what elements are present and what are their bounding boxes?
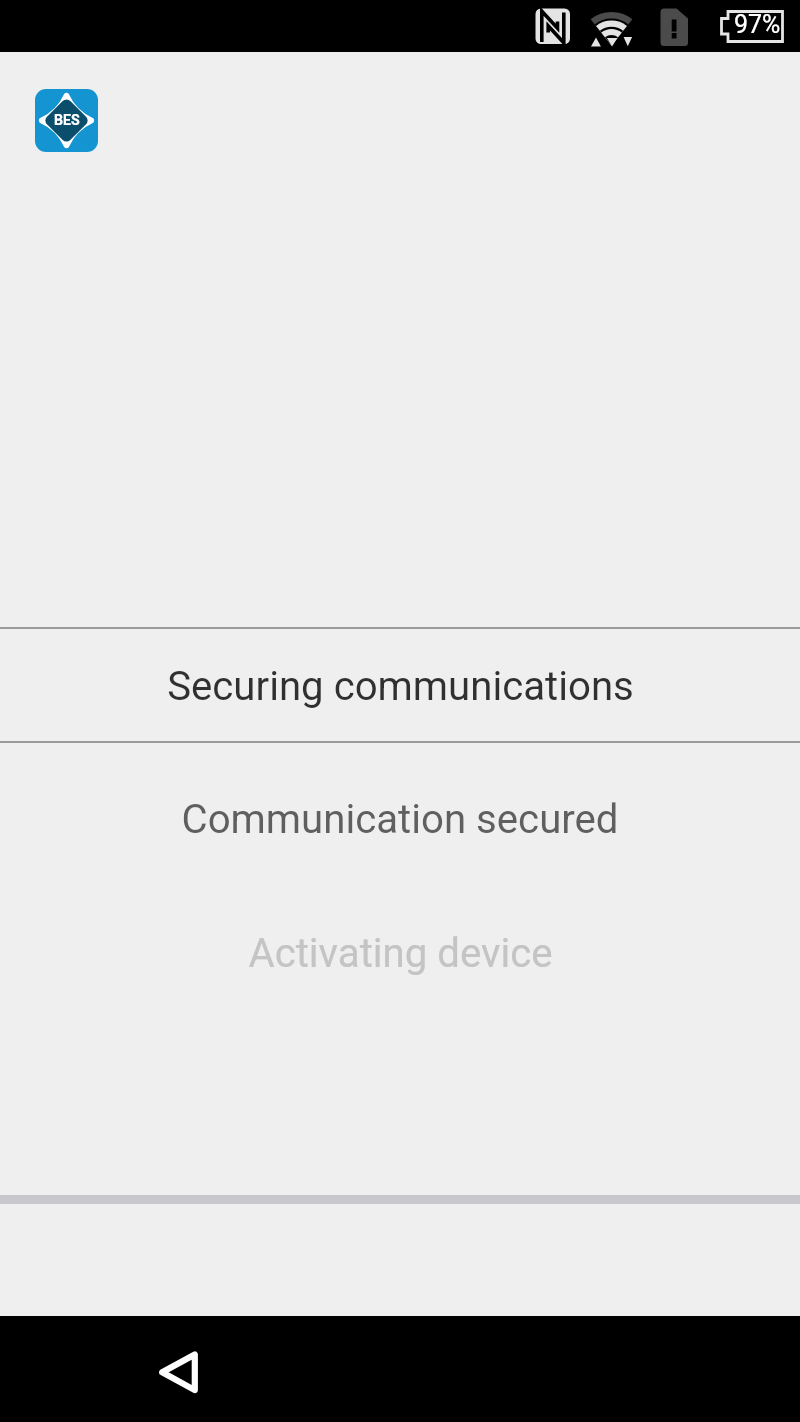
staticText: BES [54,112,80,129]
staticText: Activating device [248,930,553,977]
staticText: Communication secured [181,796,619,843]
button[interactable]: BES app icon [35,89,98,152]
staticText: 97% [734,10,781,39]
button[interactable]: Back [138,1316,218,1422]
staticText: Securing communications [167,663,634,710]
button[interactable]: Communication secured [0,744,800,877]
button[interactable]: Activating device [0,877,800,1010]
button[interactable]: Securing communications [0,629,800,744]
